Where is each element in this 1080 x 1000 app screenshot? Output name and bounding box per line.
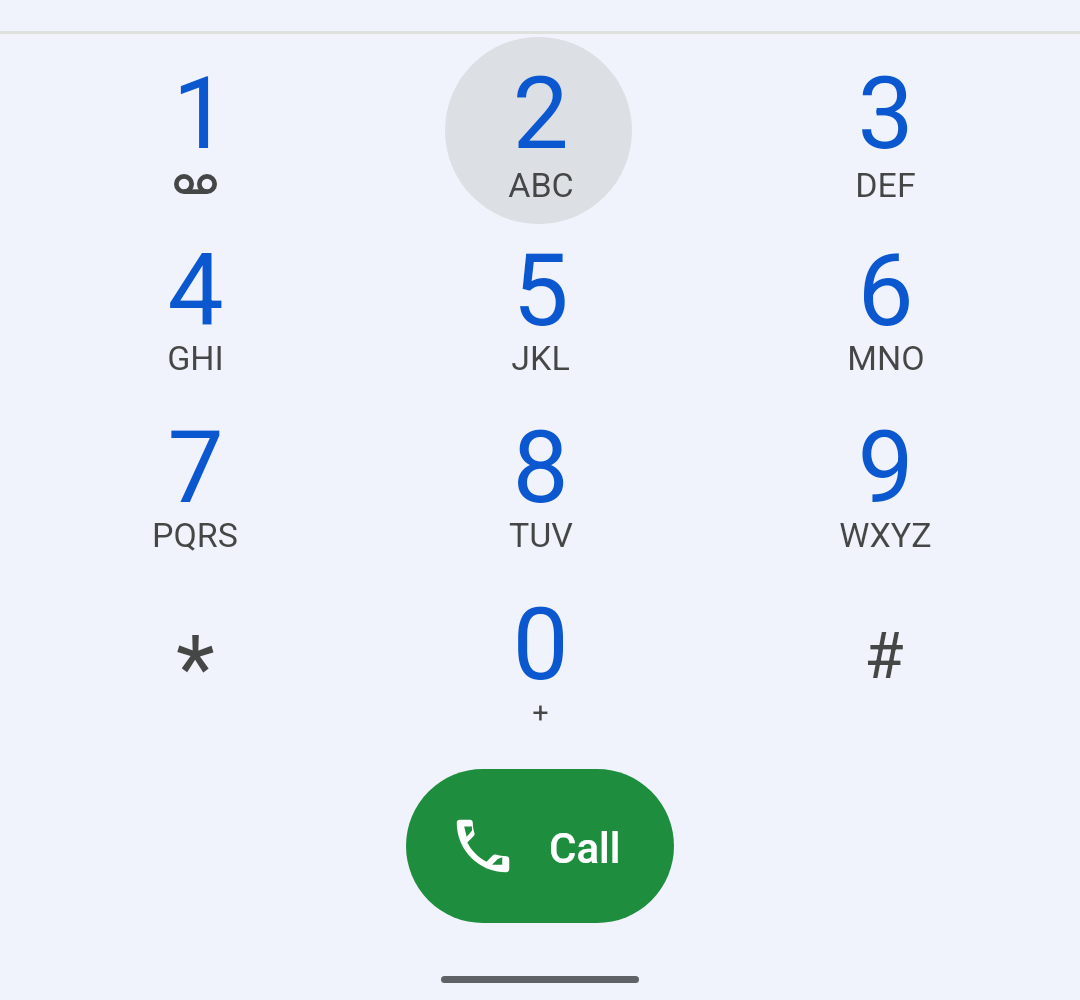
other: Voicemail — [174, 174, 217, 194]
staticText: # — [864, 619, 904, 694]
other: Call — [448, 811, 518, 881]
button[interactable]: 4 — [22, 232, 368, 409]
button[interactable]: 2 — [368, 55, 713, 232]
button[interactable]: 8 — [368, 409, 713, 586]
staticText: DEF — [855, 165, 916, 205]
staticText: GHI — [167, 338, 224, 378]
staticText: 6 — [857, 232, 914, 349]
button[interactable]: 0 — [368, 586, 713, 763]
button[interactable]: 6 — [713, 232, 1058, 409]
staticText: 2 — [512, 55, 569, 172]
staticText: ABC — [508, 165, 574, 205]
staticText: 0 — [512, 586, 569, 703]
staticText: 3 — [857, 55, 914, 172]
button[interactable]: * — [22, 586, 368, 763]
staticText: 4 — [167, 232, 224, 349]
button[interactable]: 9 — [713, 409, 1058, 586]
staticText: + — [532, 696, 549, 730]
button[interactable]: 3 — [713, 55, 1058, 232]
staticText: PQRS — [152, 515, 238, 555]
staticText: WXYZ — [839, 515, 932, 555]
staticText: 9 — [857, 409, 914, 526]
staticText: * — [176, 617, 215, 722]
button[interactable]: 5 — [368, 232, 713, 409]
button[interactable]: 7 — [22, 409, 368, 586]
button[interactable]: Call — [406, 769, 674, 923]
button[interactable]: # — [713, 586, 1058, 763]
staticText: 8 — [512, 409, 569, 526]
button[interactable]: 1 — [22, 55, 368, 232]
staticText: 5 — [512, 232, 569, 349]
staticText: 7 — [167, 409, 224, 526]
staticText: 1 — [172, 55, 229, 172]
staticText: Call — [549, 824, 621, 873]
staticText: JKL — [511, 338, 570, 378]
staticText: TUV — [509, 515, 573, 555]
staticText: MNO — [847, 338, 925, 378]
